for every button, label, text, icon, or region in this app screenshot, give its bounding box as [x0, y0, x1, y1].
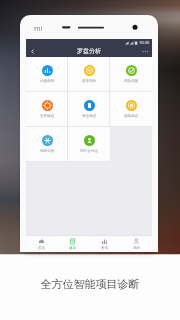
staticText: mi: [34, 24, 43, 34]
button[interactable]: 项目: [57, 236, 88, 252]
staticText: 策略建议: [124, 114, 139, 119]
staticText: 风险质量: [124, 79, 139, 84]
staticText: 全方位智能项目诊断: [0, 277, 180, 291]
button[interactable]: More options: [139, 45, 152, 57]
staticText: 我的: [133, 246, 140, 250]
staticText: 首页: [38, 246, 45, 250]
staticText: 罗盘分析: [39, 47, 139, 55]
button[interactable]: 风险质量: [110, 57, 152, 92]
button[interactable]: 商业建议: [68, 92, 110, 127]
button[interactable]: 同行业对比: [68, 127, 110, 162]
staticText: 商业建议: [82, 114, 97, 119]
staticText: 10:30: [139, 40, 150, 45]
button[interactable]: 首页: [26, 236, 57, 252]
button[interactable]: 交易建议: [26, 92, 68, 127]
button[interactable]: 我的: [120, 236, 152, 252]
button[interactable]: 基准指标: [68, 57, 110, 92]
button[interactable]: 估值模型: [26, 57, 68, 92]
button[interactable]: 情绪分析: [26, 127, 68, 162]
staticText: 资讯: [101, 246, 108, 250]
staticText: 同行业对比: [80, 149, 98, 154]
staticText: 情绪分析: [40, 149, 55, 154]
button[interactable]: 资讯: [88, 236, 120, 252]
staticText: 基准指标: [82, 79, 97, 84]
staticText: 交易建议: [40, 114, 55, 119]
staticText: 估值模型: [40, 79, 55, 84]
button[interactable]: 策略建议: [110, 92, 152, 127]
button[interactable]: Back: [26, 45, 39, 57]
staticText: 项目: [69, 246, 76, 250]
